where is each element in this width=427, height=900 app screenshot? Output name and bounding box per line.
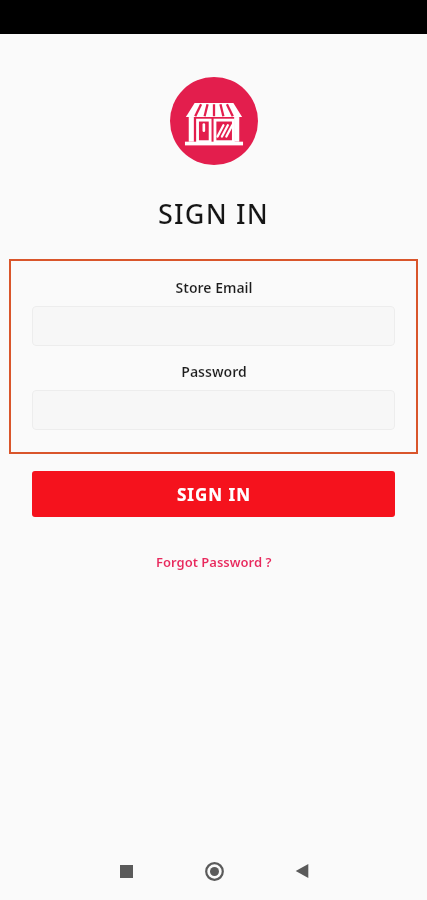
staticText: SIGN IN [177, 483, 251, 506]
button[interactable]: Back [271, 842, 333, 900]
button[interactable]: Recent apps [95, 842, 157, 900]
staticText: Store Email [175, 278, 253, 297]
staticText: SIGN IN [158, 195, 269, 232]
button[interactable]: Forgot Password ? [148, 549, 280, 575]
button[interactable]: SIGN IN [32, 471, 395, 517]
button[interactable]: Home [183, 842, 245, 900]
staticText: Forgot Password ? [156, 553, 272, 571]
staticText: Password [181, 362, 247, 381]
